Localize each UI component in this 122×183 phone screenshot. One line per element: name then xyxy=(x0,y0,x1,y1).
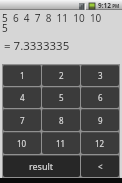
staticText: 12 xyxy=(95,138,105,149)
staticText: 2 xyxy=(59,70,64,81)
button[interactable]: 6 xyxy=(81,87,119,108)
staticText: result xyxy=(29,160,54,172)
staticText: 4 xyxy=(20,92,25,103)
button[interactable]: 3 xyxy=(81,65,119,86)
button[interactable]: 7 xyxy=(3,109,41,131)
button[interactable]: 4 xyxy=(3,87,41,108)
staticText: 8 xyxy=(59,115,64,126)
staticText: = 7.3333335 xyxy=(1,38,70,54)
staticText: 3 xyxy=(98,70,103,81)
staticText: 7 xyxy=(20,115,25,126)
button[interactable]: result xyxy=(3,155,80,177)
staticText: < xyxy=(98,161,103,172)
button[interactable]: 11 xyxy=(42,132,80,154)
button[interactable]: 12 xyxy=(81,132,119,154)
staticText: 9 xyxy=(98,115,103,126)
staticText: 9:12 xyxy=(98,1,111,10)
staticText: 1 xyxy=(20,70,25,81)
button[interactable]: 10 xyxy=(3,132,41,154)
staticText: 5 6 4 7 8 11 10 10 5 xyxy=(2,11,102,35)
button[interactable]: < xyxy=(81,155,119,177)
staticText: 5 xyxy=(59,92,64,103)
staticText: 10 xyxy=(17,138,27,149)
button[interactable]: 1 xyxy=(3,65,41,86)
staticText: PM xyxy=(111,3,120,9)
button[interactable]: 8 xyxy=(42,109,80,131)
button[interactable]: 9 xyxy=(81,109,119,131)
staticText: 6 xyxy=(98,92,103,103)
button[interactable]: 2 xyxy=(42,65,80,86)
staticText: 11 xyxy=(56,138,66,149)
button[interactable]: 5 xyxy=(42,87,80,108)
